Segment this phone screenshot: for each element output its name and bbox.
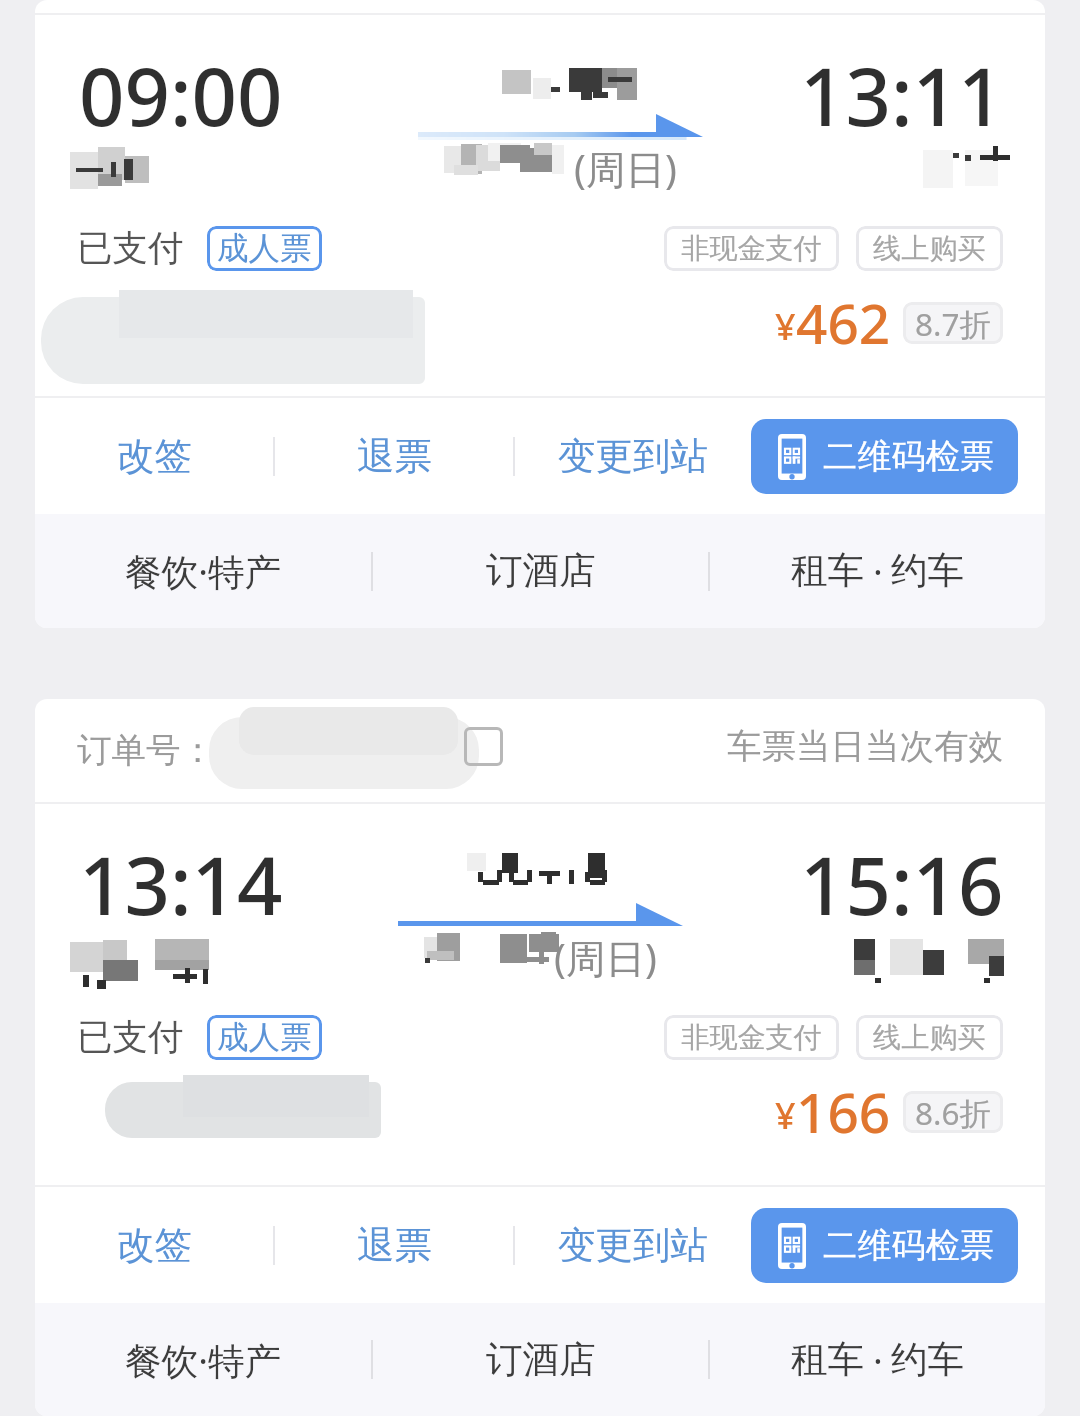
button[interactable]: 订酒店 — [373, 1303, 708, 1416]
button[interactable]: 改签 — [35, 398, 273, 514]
button[interactable]: 租车 — [710, 1303, 1045, 1416]
staticText: 二维码检票 — [823, 1224, 994, 1267]
staticText: (周日) — [574, 142, 677, 196]
staticText: 退票 — [357, 1222, 432, 1269]
button[interactable]: 复制订单号 — [464, 727, 503, 766]
button[interactable]: 餐饮·特产 — [35, 514, 371, 628]
staticText: 餐饮·特产 — [125, 546, 282, 596]
button[interactable]: 退票 — [275, 398, 513, 514]
button[interactable]: 09:00 — [35, 15, 1045, 396]
button[interactable]: 租车 — [710, 514, 1045, 628]
staticText: 退票 — [357, 433, 432, 480]
staticText: 约车 — [891, 1337, 965, 1383]
button[interactable]: 二维码检票 — [751, 1208, 1018, 1283]
staticText: 改签 — [117, 1222, 192, 1269]
staticText: ¥ — [775, 302, 796, 351]
staticText: 二维码检票 — [823, 435, 994, 478]
staticText: 13:11 — [800, 41, 1004, 149]
staticText: · — [873, 546, 883, 596]
staticText: 8.6折 — [915, 1091, 991, 1133]
staticText: 已支付 — [77, 1015, 184, 1060]
button[interactable]: 退票 — [275, 1187, 513, 1303]
button[interactable]: 订酒店 — [373, 514, 708, 628]
staticText: 09:00 — [79, 41, 283, 149]
staticText: 订酒店 — [486, 548, 596, 594]
staticText: 线上购买 — [873, 1020, 986, 1056]
button[interactable]: 变更到站 — [515, 398, 751, 514]
staticText: 订酒店 — [486, 1337, 596, 1383]
staticText: 462 — [796, 285, 891, 360]
staticText: 成人票 — [217, 1018, 312, 1058]
staticText: 15:16 — [800, 830, 1004, 938]
staticText: 166 — [796, 1074, 891, 1149]
button[interactable]: 二维码检票 — [751, 419, 1018, 494]
staticText: 租车 — [791, 548, 865, 594]
staticText: 餐饮·特产 — [125, 1335, 282, 1385]
staticText: 成人票 — [217, 229, 312, 269]
staticText: 车票当日当次有效 — [727, 725, 1003, 768]
button[interactable]: 13:14 — [35, 804, 1045, 1185]
button[interactable]: 餐饮·特产 — [35, 1303, 371, 1416]
staticText: ¥ — [775, 1091, 796, 1140]
staticText: 变更到站 — [558, 433, 708, 480]
staticText: 已支付 — [77, 226, 184, 271]
staticText: 非现金支付 — [681, 231, 822, 267]
staticText: 变更到站 — [558, 1222, 708, 1269]
staticText: · — [873, 1335, 883, 1385]
staticText: 线上购买 — [873, 231, 986, 267]
staticText: 改签 — [117, 433, 192, 480]
staticText: 租车 — [791, 1337, 865, 1383]
button[interactable]: 改签 — [35, 1187, 273, 1303]
staticText: 订单号： — [77, 729, 215, 772]
staticText: 非现金支付 — [681, 1020, 822, 1056]
staticText: 约车 — [891, 548, 965, 594]
button[interactable]: 变更到站 — [515, 1187, 751, 1303]
staticText: 8.7折 — [915, 302, 991, 344]
staticText: 13:14 — [79, 830, 283, 938]
staticText: (周日) — [554, 931, 657, 985]
